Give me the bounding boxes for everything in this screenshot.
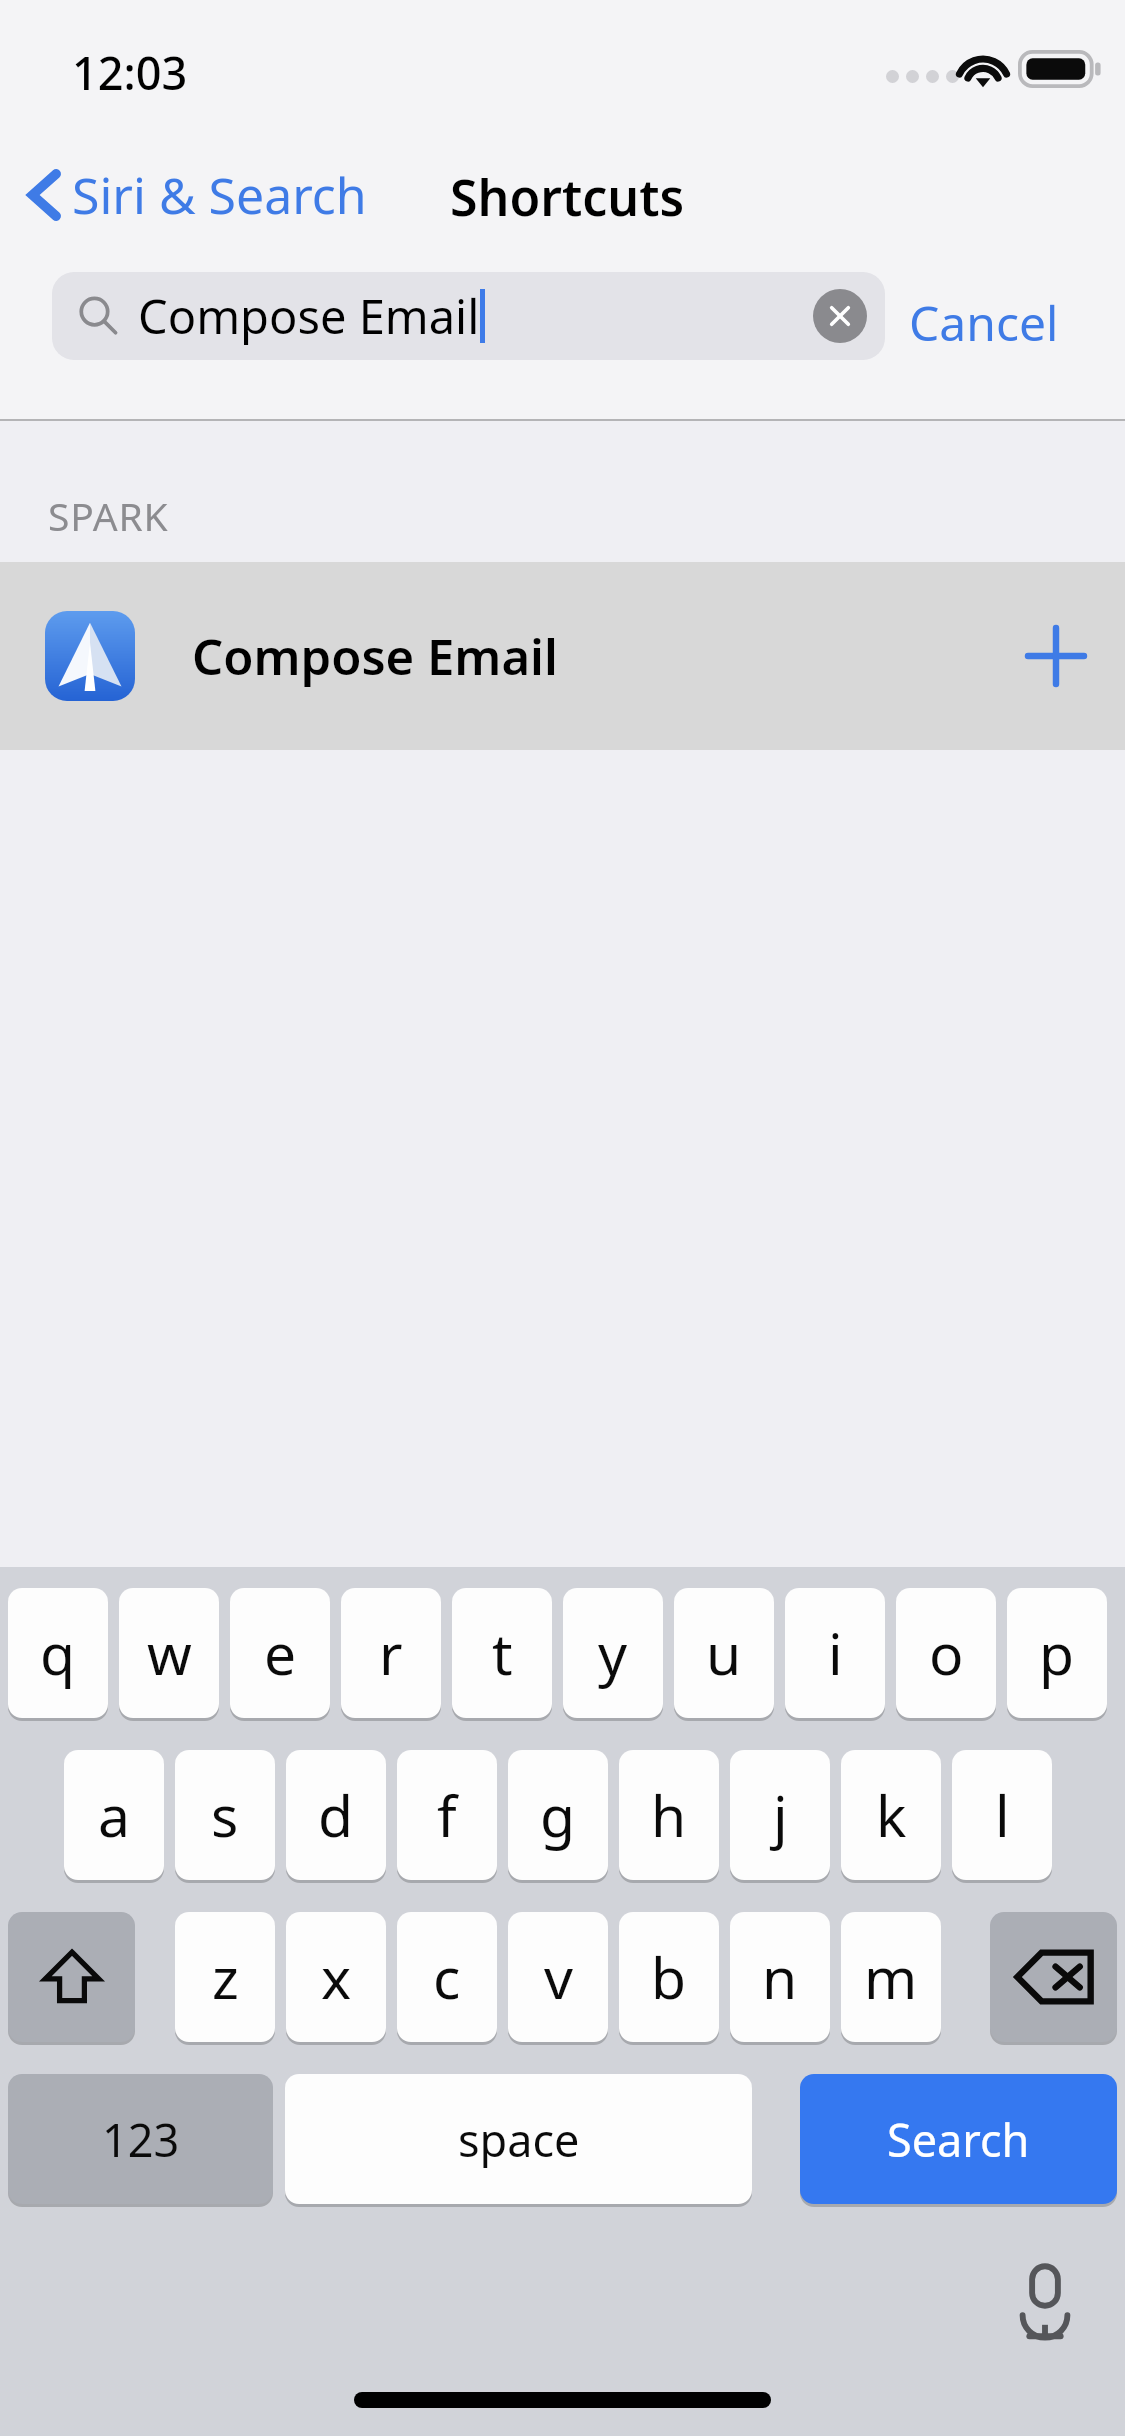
staticText: l	[995, 1776, 1010, 1854]
staticText: m	[864, 1938, 918, 2016]
staticText: n	[762, 1938, 798, 2016]
staticText: s	[211, 1776, 239, 1854]
button[interactable]: f	[397, 1750, 497, 1880]
button[interactable]: Siri & Search	[20, 155, 375, 235]
staticText: w	[147, 1614, 192, 1692]
staticText: v	[544, 1938, 573, 2016]
staticText: a	[98, 1776, 130, 1854]
staticText: y	[598, 1614, 628, 1692]
button[interactable]: w	[119, 1588, 219, 1718]
button[interactable]: q	[8, 1588, 108, 1718]
staticText: Siri & Search	[72, 161, 367, 229]
staticText: z	[212, 1938, 239, 2016]
staticText: c	[433, 1938, 461, 2016]
button[interactable]: m	[841, 1912, 941, 2042]
button[interactable]: Add shortcut	[1001, 601, 1111, 711]
button[interactable]: k	[841, 1750, 941, 1880]
staticText: 123	[102, 2109, 180, 2170]
staticText: b	[651, 1938, 687, 2016]
button[interactable]: z	[175, 1912, 275, 2042]
staticText: h	[651, 1776, 687, 1854]
button[interactable]: Clear text	[813, 289, 867, 343]
button[interactable]: p	[1007, 1588, 1107, 1718]
button[interactable]: Cancel	[903, 284, 1065, 361]
staticText: Cancel	[909, 290, 1059, 355]
button[interactable]: Dictate	[1000, 2257, 1090, 2347]
staticText: r	[379, 1614, 403, 1692]
staticText: Shortcuts	[450, 163, 685, 231]
staticText: q	[40, 1614, 76, 1692]
button[interactable]: Search	[800, 2074, 1117, 2204]
button[interactable]: e	[230, 1588, 330, 1718]
button[interactable]: b	[619, 1912, 719, 2042]
staticText: k	[876, 1776, 907, 1854]
button[interactable]: a	[64, 1750, 164, 1880]
staticText: SPARK	[48, 489, 169, 542]
staticText: Search	[887, 2109, 1030, 2170]
staticText: g	[540, 1776, 576, 1854]
staticText: j	[773, 1776, 788, 1854]
button[interactable]: j	[730, 1750, 830, 1880]
button[interactable]: Shift	[8, 1912, 135, 2042]
staticText: space	[458, 2109, 580, 2170]
button[interactable]: n	[730, 1912, 830, 2042]
staticText: Compose Email	[192, 623, 558, 690]
staticText: 12:03	[72, 42, 188, 103]
button[interactable]: 123	[8, 2074, 273, 2204]
staticText: t	[492, 1614, 513, 1692]
button[interactable]: Compose Email	[52, 272, 885, 360]
button[interactable]: t	[452, 1588, 552, 1718]
button[interactable]: d	[286, 1750, 386, 1880]
staticText: x	[321, 1938, 352, 2016]
button[interactable]: v	[508, 1912, 608, 2042]
button[interactable]: r	[341, 1588, 441, 1718]
staticText: d	[318, 1776, 354, 1854]
button[interactable]: g	[508, 1750, 608, 1880]
button[interactable]: Backspace	[990, 1912, 1117, 2042]
button[interactable]: h	[619, 1750, 719, 1880]
staticText: u	[706, 1614, 742, 1692]
button[interactable]: o	[896, 1588, 996, 1718]
staticText: i	[828, 1614, 843, 1692]
staticText: p	[1039, 1614, 1075, 1692]
staticText: Compose Email	[138, 284, 480, 348]
button[interactable]: s	[175, 1750, 275, 1880]
button[interactable]: space	[285, 2074, 752, 2204]
button[interactable]: l	[952, 1750, 1052, 1880]
staticText: e	[264, 1614, 297, 1692]
button[interactable]: Compose Email	[0, 562, 1125, 750]
button[interactable]: i	[785, 1588, 885, 1718]
button[interactable]: y	[563, 1588, 663, 1718]
button[interactable]: u	[674, 1588, 774, 1718]
staticText: f	[437, 1776, 457, 1854]
button[interactable]: x	[286, 1912, 386, 2042]
button[interactable]: c	[397, 1912, 497, 2042]
staticText: o	[929, 1614, 964, 1692]
